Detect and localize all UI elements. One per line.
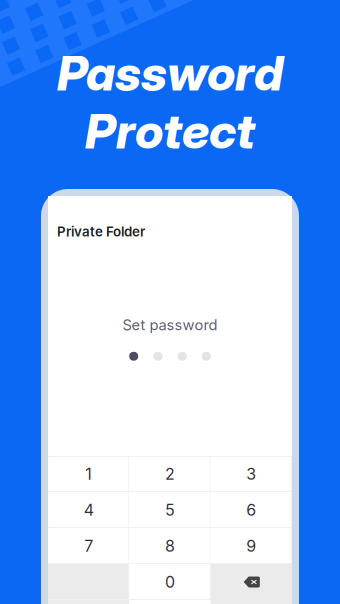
staticText: Set password <box>122 316 217 334</box>
staticText: Password <box>57 44 283 102</box>
button[interactable]: Delete <box>211 564 292 600</box>
button[interactable]: 6 <box>211 492 292 528</box>
button[interactable]: 9 <box>211 528 292 564</box>
staticText: 7 <box>84 536 93 556</box>
button[interactable]: 7 <box>48 528 129 564</box>
button[interactable]: 8 <box>129 528 211 564</box>
button[interactable]: 5 <box>129 492 211 528</box>
staticText: 3 <box>246 464 256 484</box>
staticText: 8 <box>165 536 175 556</box>
staticText: 6 <box>246 500 256 520</box>
button[interactable]: 3 <box>211 456 292 492</box>
staticText: 4 <box>84 500 94 520</box>
staticText: 0 <box>165 572 175 592</box>
staticText: 9 <box>246 536 256 556</box>
button[interactable]: 0 <box>129 564 211 600</box>
staticText: 2 <box>165 464 175 484</box>
staticText: 1 <box>85 464 92 484</box>
staticText: 5 <box>165 500 175 520</box>
staticText: Protect <box>85 102 255 160</box>
button[interactable]: 1 <box>48 456 129 492</box>
button[interactable]: 4 <box>48 492 129 528</box>
staticText: Private Folder <box>57 223 145 240</box>
button[interactable]: 2 <box>129 456 211 492</box>
